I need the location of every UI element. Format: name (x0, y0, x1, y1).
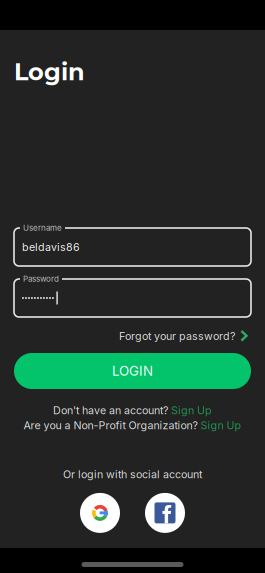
staticText: Username (23, 223, 62, 233)
button[interactable]: LOGIN (14, 353, 251, 389)
staticText: beldavis86 (22, 240, 80, 253)
button[interactable]: Sign Up (171, 404, 212, 417)
staticText: Password (23, 274, 59, 284)
button[interactable]: Sign in with Facebook (145, 493, 185, 533)
button[interactable]: Sign Up (200, 419, 241, 432)
staticText: Don't have an account? (53, 404, 168, 417)
staticText: Or login with social account (63, 468, 202, 481)
staticText: Are you a Non-Profit Organization? (23, 419, 197, 432)
button[interactable]: Forgot your password? (0, 328, 265, 344)
staticText: Sign Up (200, 419, 241, 432)
staticText: Forgot your password? (119, 329, 235, 342)
staticText: Login (14, 57, 85, 86)
staticText: Sign Up (171, 404, 212, 417)
staticText: LOGIN (112, 363, 153, 379)
button[interactable]: Sign in with Google (80, 493, 120, 533)
